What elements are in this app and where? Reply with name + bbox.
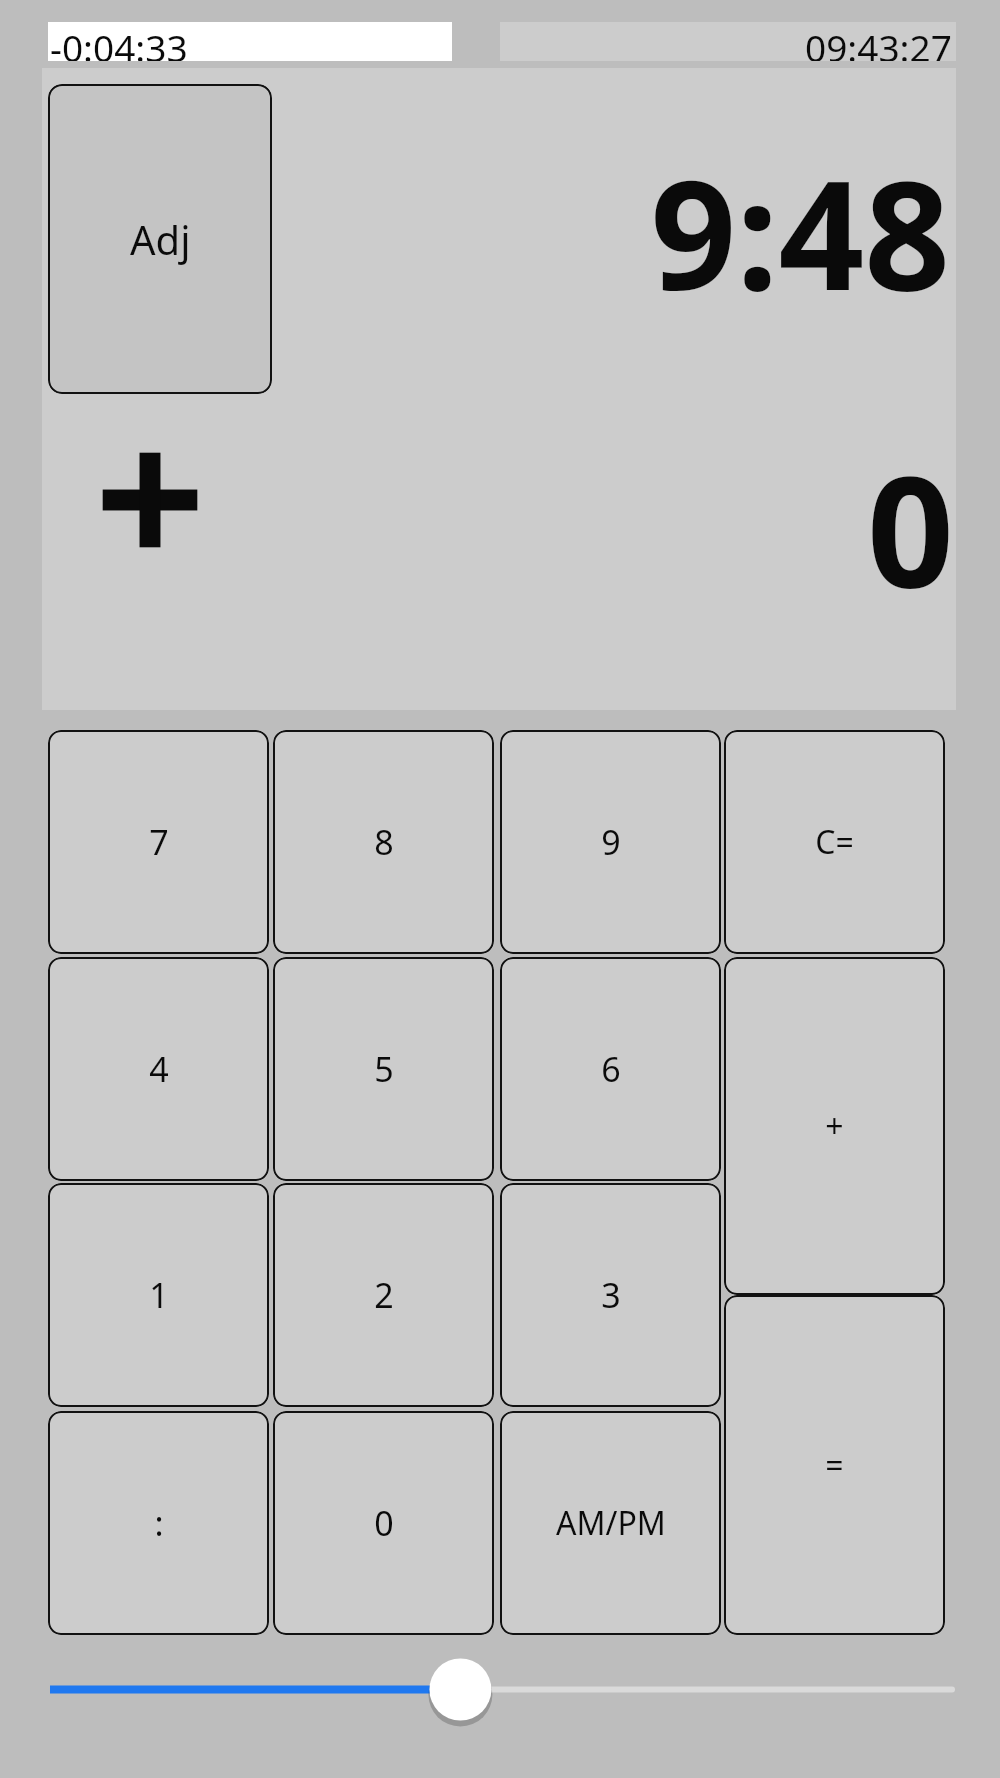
button[interactable]: 7	[48, 730, 269, 954]
button[interactable]: C=	[724, 730, 945, 954]
button[interactable]: 5	[273, 957, 494, 1181]
staticText: 3	[601, 1272, 621, 1318]
staticText: :	[154, 1500, 164, 1546]
staticText: AM/PM	[556, 1501, 666, 1545]
button[interactable]: 09:43:27	[500, 22, 956, 61]
staticText: -0:04:33	[50, 22, 188, 61]
button[interactable]: :	[48, 1411, 269, 1635]
staticText: =	[825, 1443, 844, 1487]
button[interactable]: 9	[500, 730, 721, 954]
staticText: 4	[149, 1046, 169, 1092]
button[interactable]: 3	[500, 1183, 721, 1407]
button[interactable]: Adjustment slider	[40, 1640, 960, 1750]
button[interactable]: 8	[273, 730, 494, 954]
button[interactable]: +	[724, 957, 945, 1295]
staticText: 9	[601, 819, 621, 865]
staticText: 5	[374, 1046, 394, 1092]
staticText: 6	[601, 1046, 621, 1092]
staticText: 9:48	[650, 130, 950, 300]
staticText: Adj	[130, 212, 191, 266]
button[interactable]: 2	[273, 1183, 494, 1407]
staticText: 7	[149, 819, 169, 865]
staticText: 0	[374, 1500, 394, 1546]
staticText: 8	[374, 819, 394, 865]
staticText: 2	[374, 1272, 394, 1318]
staticText: +	[825, 1104, 844, 1148]
button[interactable]: 9:48	[330, 130, 950, 300]
button[interactable]: 0	[560, 425, 954, 625]
button[interactable]: 0	[273, 1411, 494, 1635]
button[interactable]: 4	[48, 957, 269, 1181]
button[interactable]: 1	[48, 1183, 269, 1407]
button[interactable]: Adj	[48, 84, 272, 394]
button[interactable]: AM/PM	[500, 1411, 721, 1635]
staticText: 1	[149, 1272, 169, 1318]
staticText: 0	[867, 425, 954, 625]
button[interactable]: -0:04:33	[48, 22, 452, 61]
button[interactable]: =	[724, 1295, 945, 1635]
staticText: C=	[815, 820, 854, 864]
staticText: 09:43:27	[805, 22, 952, 61]
other: Pending operator plus	[95, 440, 205, 560]
button[interactable]: 6	[500, 957, 721, 1181]
